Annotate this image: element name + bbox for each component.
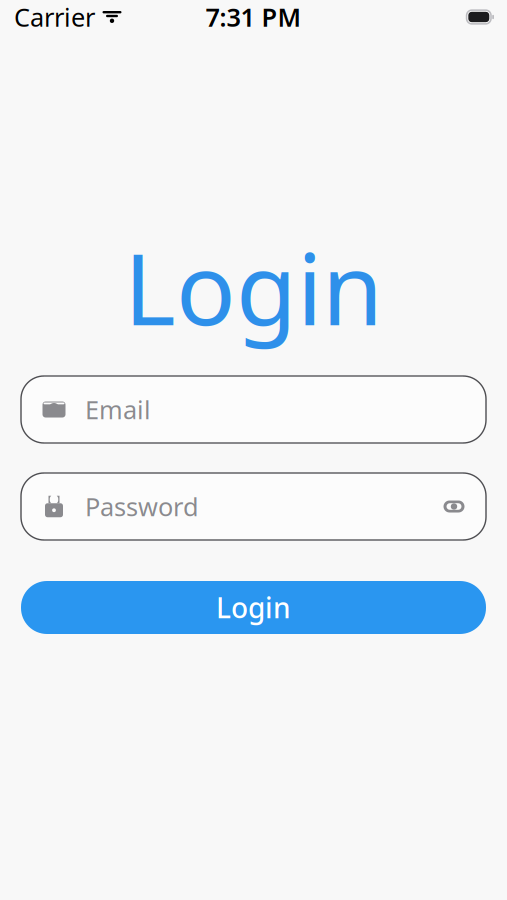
button[interactable]: Password xyxy=(21,473,486,540)
button[interactable]: Email xyxy=(21,376,486,443)
staticText: Login xyxy=(124,220,383,354)
staticText: Password xyxy=(85,490,199,523)
button[interactable]: Login xyxy=(21,581,486,634)
staticText: Email xyxy=(85,393,151,426)
staticText: Carrier xyxy=(14,0,95,34)
staticText: Login xyxy=(216,589,291,626)
staticText: 7:31 PM xyxy=(205,0,301,34)
